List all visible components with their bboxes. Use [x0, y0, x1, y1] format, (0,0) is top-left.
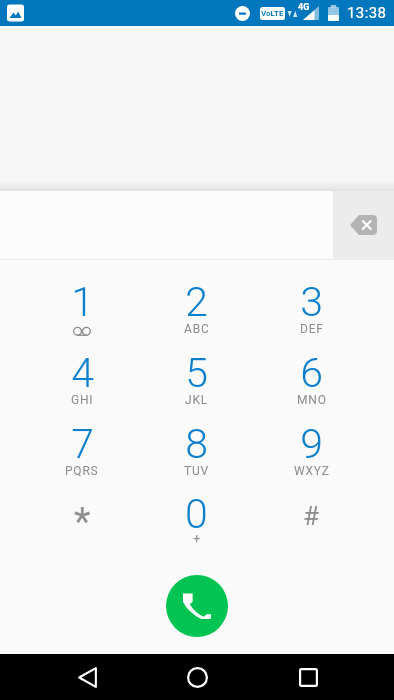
- staticText: WXYZ: [294, 464, 330, 478]
- button[interactable]: 6: [254, 342, 369, 413]
- staticText: 7: [71, 420, 94, 468]
- button[interactable]: 5: [139, 342, 254, 413]
- button[interactable]: Call: [166, 575, 228, 637]
- button[interactable]: 2: [139, 271, 254, 342]
- button[interactable]: 3: [254, 271, 369, 342]
- staticText: 4: [71, 349, 94, 397]
- button[interactable]: 4: [25, 342, 139, 413]
- staticText: MNO: [297, 393, 327, 407]
- button[interactable]: 0: [139, 484, 254, 555]
- staticText: 3: [300, 278, 323, 326]
- staticText: 9: [300, 420, 323, 468]
- staticText: 6: [300, 349, 323, 397]
- button[interactable]: #: [254, 484, 369, 555]
- staticText: 0: [185, 490, 208, 538]
- staticText: #: [303, 501, 320, 531]
- staticText: 13:38: [347, 4, 387, 22]
- staticText: +: [193, 531, 201, 546]
- staticText: 1: [71, 278, 94, 326]
- staticText: TUV: [184, 464, 209, 478]
- button[interactable]: *: [25, 484, 139, 555]
- staticText: PQRS: [65, 464, 99, 478]
- button[interactable]: Back: [63, 654, 111, 700]
- staticText: VoLTE: [261, 9, 284, 18]
- staticText: ABC: [184, 322, 210, 336]
- staticText: 5: [185, 349, 208, 397]
- button[interactable]: Home: [173, 654, 221, 700]
- button[interactable]: 1: [25, 271, 139, 342]
- staticText: *: [74, 500, 91, 545]
- button[interactable]: Recents: [284, 654, 332, 700]
- staticText: 8: [185, 420, 208, 468]
- button[interactable]: 7: [25, 413, 139, 484]
- staticText: 2: [185, 278, 208, 326]
- button[interactable]: 9: [254, 413, 369, 484]
- staticText: 4G: [298, 2, 310, 13]
- staticText: GHI: [71, 393, 94, 407]
- button[interactable]: Backspace: [333, 191, 394, 259]
- staticText: DEF: [300, 322, 324, 336]
- button[interactable]: 8: [139, 413, 254, 484]
- staticText: JKL: [185, 393, 209, 407]
